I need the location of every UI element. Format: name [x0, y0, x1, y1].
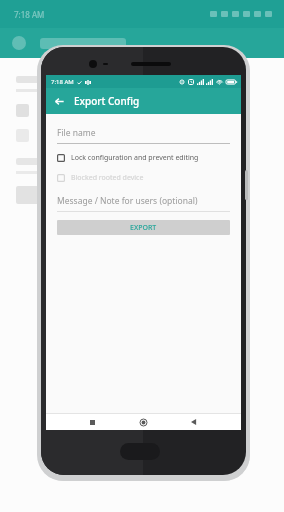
- staticText: Lock configuration and prevent editing: [71, 153, 199, 163]
- button[interactable]: Lock configuration and prevent editing: [57, 153, 230, 163]
- button[interactable]: EXPORT: [57, 220, 230, 235]
- button[interactable]: Recents: [84, 414, 100, 430]
- staticText: Blocked rooted device: [71, 173, 144, 183]
- staticText: Export Config: [74, 94, 140, 108]
- staticText: File name: [57, 127, 96, 139]
- staticText: 7:18 AM: [51, 78, 74, 86]
- staticText: Message / Note for users (optional): [57, 195, 198, 207]
- staticText: EXPORT: [130, 223, 157, 233]
- button[interactable]: Message / Note for users (optional): [57, 195, 230, 212]
- button[interactable]: Back: [186, 414, 202, 430]
- button[interactable]: Blocked rooted device: [57, 173, 230, 183]
- staticText: 7:18 AM: [14, 9, 45, 20]
- button[interactable]: Back: [49, 91, 69, 111]
- button[interactable]: File name: [57, 127, 230, 144]
- button[interactable]: Home: [135, 414, 151, 430]
